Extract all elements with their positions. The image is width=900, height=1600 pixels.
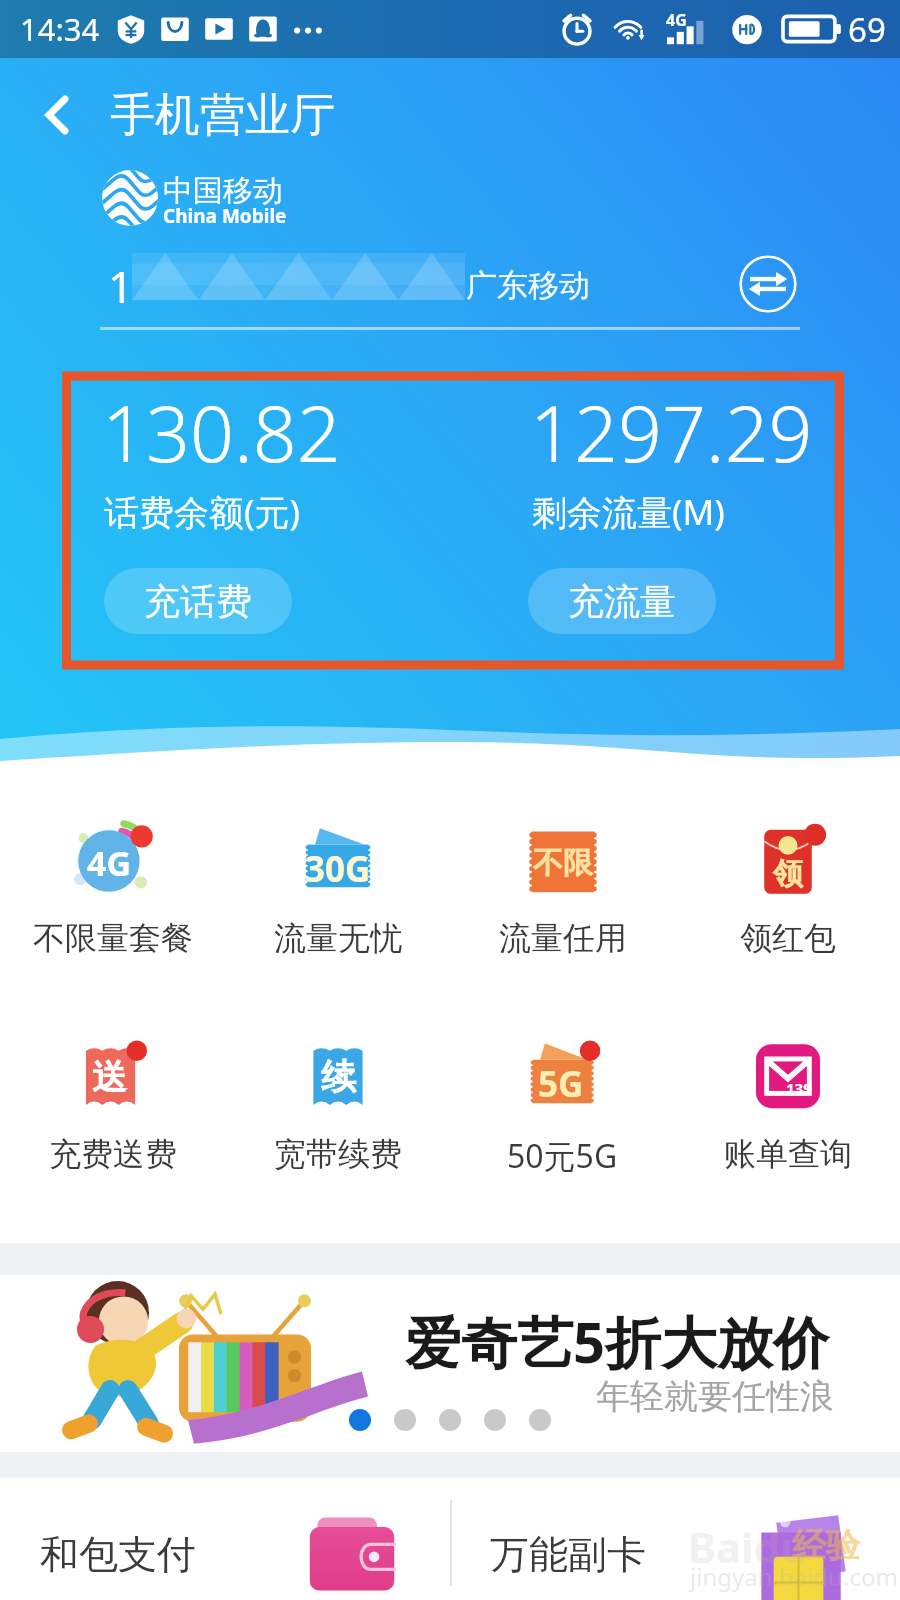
staticText: 领 bbox=[773, 855, 803, 893]
button[interactable]: 续 bbox=[225, 1018, 450, 1178]
staticText: 50元5G bbox=[507, 1134, 618, 1178]
staticText: 充话费 bbox=[144, 579, 252, 624]
staticText: 流量任用 bbox=[499, 918, 627, 958]
staticText: 5G bbox=[538, 1060, 584, 1108]
button[interactable]: 爱奇艺5折大放价 bbox=[0, 1275, 900, 1452]
staticText: 话费余额(元) bbox=[104, 488, 301, 536]
staticText: 4G bbox=[666, 9, 687, 31]
button[interactable]: 送 bbox=[0, 1018, 225, 1178]
button[interactable]: Banner page 2 bbox=[394, 1409, 416, 1431]
button[interactable]: 和包支付 bbox=[0, 1478, 450, 1600]
button[interactable]: Banner page 3 bbox=[439, 1409, 461, 1431]
staticText: 中国移动 bbox=[163, 172, 283, 210]
staticText: 账单查询 bbox=[724, 1134, 852, 1174]
staticText: 续 bbox=[321, 1055, 356, 1099]
button[interactable]: 139 bbox=[675, 1018, 900, 1178]
staticText: 领红包 bbox=[740, 918, 836, 958]
staticText: 剩余流量(M) bbox=[532, 488, 725, 536]
button[interactable]: 4G bbox=[0, 802, 225, 962]
button[interactable]: 不限 bbox=[450, 802, 675, 962]
staticText: 年轻就要任性浪 bbox=[596, 1375, 834, 1418]
staticText: China Mobile bbox=[163, 203, 287, 229]
staticText: 130.82 bbox=[102, 380, 341, 485]
staticText: 4G bbox=[87, 840, 132, 886]
button[interactable]: Back bbox=[26, 84, 88, 146]
staticText: 经验 bbox=[792, 1524, 860, 1567]
staticText: 手机营业厅 bbox=[110, 87, 335, 144]
staticText: 送 bbox=[92, 1055, 127, 1099]
button[interactable]: Banner page 4 bbox=[484, 1409, 506, 1431]
button[interactable]: Banner page 5 bbox=[529, 1409, 551, 1431]
button[interactable]: Banner page 1 bbox=[349, 1409, 371, 1431]
staticText: 30G bbox=[305, 845, 371, 893]
staticText: 1297.29 bbox=[530, 380, 813, 485]
staticText: 流量无忧 bbox=[274, 918, 402, 958]
staticText: 1 bbox=[108, 256, 134, 316]
button[interactable]: 5G bbox=[450, 1018, 675, 1178]
staticText: 广东移动 bbox=[466, 266, 590, 305]
staticText: Baidu bbox=[688, 1518, 808, 1575]
staticText: 充费送费 bbox=[49, 1134, 177, 1174]
staticText: 充流量 bbox=[568, 579, 676, 624]
staticText: 14:34 bbox=[20, 8, 100, 50]
staticText: 万能副卡 bbox=[490, 1530, 646, 1579]
button[interactable]: 领 bbox=[675, 802, 900, 962]
staticText: 爱奇艺5折大放价 bbox=[405, 1303, 830, 1379]
button[interactable]: 充话费 bbox=[104, 568, 292, 634]
staticText: 和包支付 bbox=[40, 1530, 196, 1579]
button[interactable]: Switch number bbox=[734, 250, 802, 318]
staticText: 139 bbox=[786, 1078, 812, 1098]
staticText: 不限量套餐 bbox=[33, 918, 193, 958]
staticText: 宽带续费 bbox=[274, 1134, 402, 1174]
button[interactable]: 万能副卡 bbox=[450, 1478, 900, 1600]
staticText: jingyan.baidu.com bbox=[690, 1560, 898, 1593]
button[interactable]: 30G bbox=[225, 802, 450, 962]
button[interactable]: 充流量 bbox=[528, 568, 716, 634]
staticText: 69 bbox=[848, 7, 886, 52]
staticText: 不限 bbox=[533, 844, 593, 882]
